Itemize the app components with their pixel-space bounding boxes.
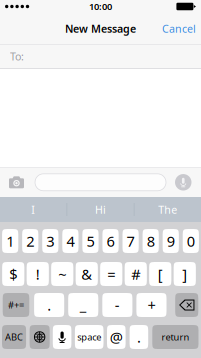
button[interactable]: = bbox=[100, 262, 122, 286]
button[interactable]: . bbox=[34, 293, 64, 317]
staticText: Cancel bbox=[162, 21, 196, 36]
staticText: ~ bbox=[58, 264, 66, 284]
staticText: ] bbox=[182, 264, 187, 284]
staticText: . bbox=[137, 327, 141, 347]
button[interactable]: $ bbox=[2, 262, 24, 286]
staticText: = bbox=[107, 264, 115, 284]
button[interactable]: The bbox=[134, 197, 201, 222]
button[interactable]: 1 bbox=[2, 229, 18, 253]
button[interactable]: 7 bbox=[122, 229, 139, 253]
staticText: 3 bbox=[46, 231, 54, 251]
button[interactable]: . bbox=[130, 325, 148, 349]
staticText: # bbox=[131, 264, 140, 284]
staticText: 9 bbox=[167, 231, 175, 251]
staticText: . bbox=[47, 295, 51, 315]
button[interactable]: 2 bbox=[22, 229, 38, 253]
staticText: The bbox=[158, 202, 177, 217]
button[interactable]: ~ bbox=[51, 262, 73, 286]
staticText: 0 bbox=[187, 231, 195, 251]
button[interactable]: Cancel bbox=[157, 15, 201, 42]
staticText: 8 bbox=[147, 231, 155, 251]
button[interactable]: Dictate bbox=[53, 325, 71, 349]
staticText: + bbox=[147, 295, 155, 315]
button[interactable]: ABC bbox=[2, 325, 26, 349]
button[interactable]: [ bbox=[149, 262, 171, 286]
button[interactable]: 3 bbox=[42, 229, 58, 253]
button[interactable]: return bbox=[152, 325, 198, 349]
button[interactable]: ! bbox=[27, 262, 49, 286]
button[interactable]: Delete bbox=[175, 293, 198, 317]
staticText: [ bbox=[158, 264, 163, 284]
staticText: 7 bbox=[127, 231, 135, 251]
staticText: ! bbox=[36, 264, 40, 284]
button[interactable]: Next keyboard bbox=[30, 325, 50, 349]
button[interactable]: @ bbox=[107, 325, 126, 349]
button[interactable]: 5 bbox=[82, 229, 99, 253]
staticText: 1 bbox=[6, 231, 14, 251]
staticText: return bbox=[161, 331, 189, 343]
button[interactable]: 9 bbox=[163, 229, 179, 253]
button[interactable]: ] bbox=[174, 262, 196, 286]
button[interactable]: I bbox=[0, 197, 66, 222]
staticText: space bbox=[77, 331, 101, 343]
staticText: Hi bbox=[95, 202, 106, 217]
staticText: I bbox=[31, 202, 35, 217]
staticText: 5 bbox=[86, 231, 94, 251]
staticText: @ bbox=[110, 327, 123, 347]
button[interactable]: _ bbox=[68, 293, 98, 317]
button[interactable]: #+= bbox=[3, 293, 29, 317]
staticText: #+= bbox=[8, 299, 24, 311]
staticText: 2 bbox=[26, 231, 34, 251]
button[interactable]: Camera bbox=[9, 176, 24, 188]
button[interactable]: - bbox=[102, 293, 132, 317]
staticText: $ bbox=[9, 264, 17, 284]
staticText: 4 bbox=[66, 231, 74, 251]
staticText: - bbox=[115, 295, 120, 315]
button[interactable]: + bbox=[136, 293, 166, 317]
button[interactable]: 6 bbox=[102, 229, 119, 253]
button[interactable]: Hi bbox=[67, 197, 134, 222]
button[interactable]: 8 bbox=[143, 229, 159, 253]
button[interactable]: & bbox=[76, 262, 98, 286]
button[interactable]: 0 bbox=[183, 229, 199, 253]
staticText: ABC bbox=[5, 331, 23, 343]
button[interactable]: 4 bbox=[62, 229, 78, 253]
staticText: _ bbox=[80, 295, 87, 315]
staticText: New Message bbox=[65, 21, 136, 36]
staticText: & bbox=[81, 264, 92, 284]
staticText: 6 bbox=[106, 231, 114, 251]
button[interactable]: Dictate bbox=[175, 174, 191, 190]
staticText: 10:00 bbox=[89, 0, 112, 13]
button[interactable]: # bbox=[125, 262, 147, 286]
button[interactable]: space bbox=[75, 325, 103, 349]
staticText: To: bbox=[10, 49, 24, 63]
